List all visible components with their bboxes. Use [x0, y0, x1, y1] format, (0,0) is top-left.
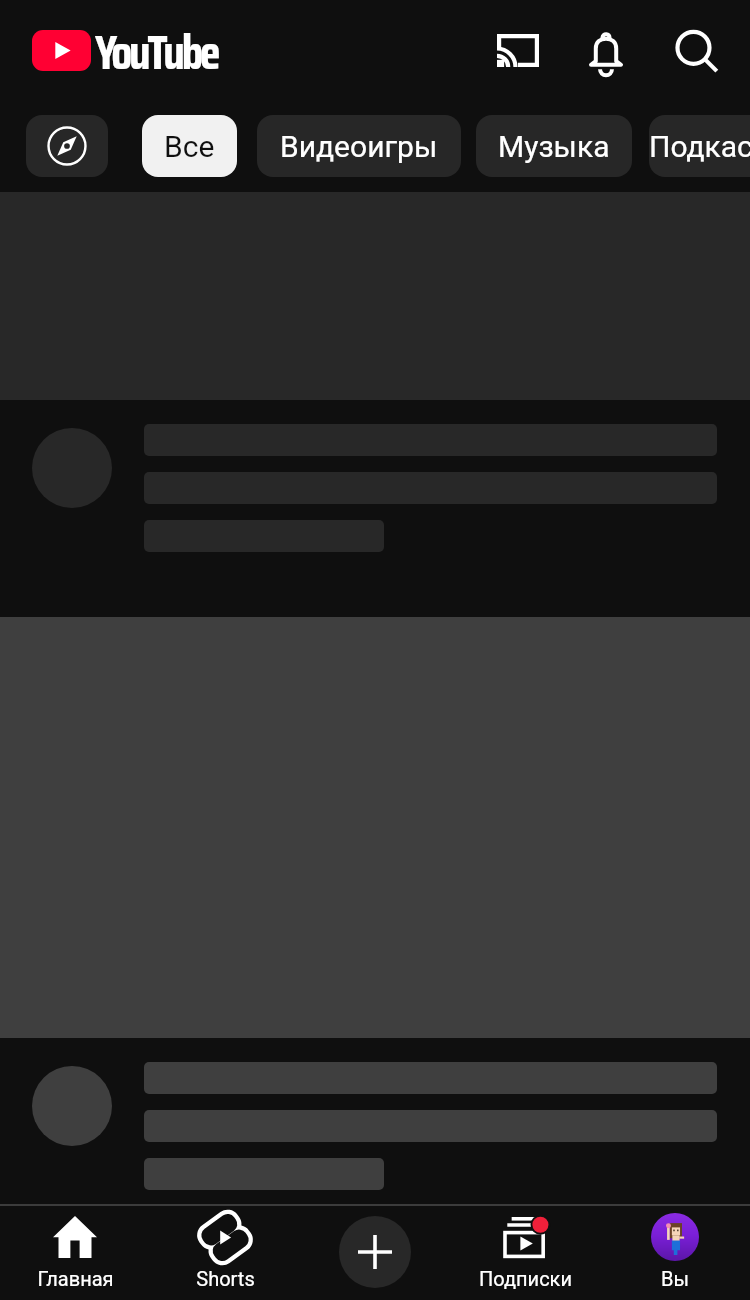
button[interactable]: Главная [0, 1204, 150, 1300]
button[interactable]: Create [339, 1216, 411, 1288]
staticText: Подкасты [649, 129, 750, 164]
button[interactable]: Подкасты [649, 115, 750, 177]
button[interactable]: Shorts [150, 1204, 300, 1300]
staticText: Shorts [196, 1267, 255, 1290]
button[interactable]: YouTube home [32, 12, 218, 88]
staticText: Все [164, 129, 215, 164]
button[interactable]: Notifications [564, 6, 648, 94]
staticText: Главная [37, 1267, 114, 1290]
staticText: Видеоигры [280, 129, 438, 164]
button[interactable]: Search [655, 6, 739, 94]
staticText: Вы [661, 1267, 689, 1290]
staticText: Подписки [479, 1267, 572, 1290]
button[interactable]: Подписки [450, 1204, 600, 1300]
button[interactable]: Explore [26, 115, 108, 177]
button[interactable]: Все [142, 115, 237, 177]
staticText: YouTube [95, 15, 218, 91]
staticText: Музыка [498, 129, 610, 164]
button[interactable]: Видеоигры [257, 115, 461, 177]
button[interactable]: Вы [600, 1204, 750, 1300]
button[interactable]: Cast [476, 6, 560, 94]
button[interactable]: Музыка [476, 115, 632, 177]
